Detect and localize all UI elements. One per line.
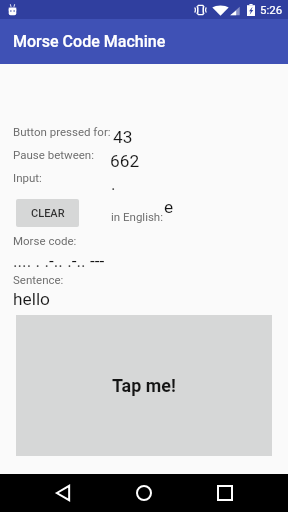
staticText: in English: <box>111 210 163 223</box>
staticText: hello <box>13 289 50 309</box>
staticText: 5:26 <box>260 3 283 16</box>
staticText: .... . .-.. .-.. --- <box>13 251 105 271</box>
button[interactable]: Tap me! <box>16 315 272 456</box>
staticText: e <box>164 197 174 217</box>
button[interactable]: Recent apps <box>206 474 244 512</box>
staticText: CLEAR <box>31 207 65 220</box>
staticText: Morse Code Machine <box>13 32 166 51</box>
staticText: Pause between: <box>13 148 94 161</box>
staticText: Sentence: <box>13 273 64 286</box>
staticText: 662 <box>110 151 140 171</box>
staticText: Button pressed for: <box>13 125 111 138</box>
staticText: Input: <box>13 171 42 184</box>
button[interactable]: Back <box>44 474 82 512</box>
staticText: Tap me! <box>112 375 176 396</box>
staticText: . <box>111 174 116 194</box>
staticText: 43 <box>113 127 133 147</box>
staticText: Morse code: <box>13 234 77 247</box>
button[interactable]: Home <box>125 474 163 512</box>
button[interactable]: CLEAR <box>16 199 79 227</box>
